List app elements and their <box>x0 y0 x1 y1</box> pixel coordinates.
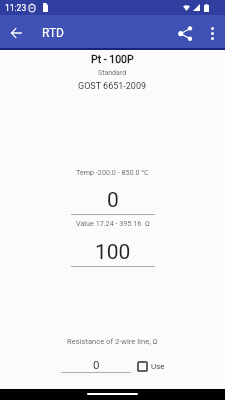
staticText: 0 <box>93 358 100 371</box>
staticText: 0 <box>107 188 119 213</box>
staticText: 100 <box>95 240 131 265</box>
staticText: Pt - 100P <box>91 53 134 65</box>
staticText: Temp -200.0 - 850.0 ℃ <box>76 167 149 177</box>
button[interactable]: Share <box>172 20 198 46</box>
staticText: Use <box>151 362 165 371</box>
button[interactable]: More options <box>200 21 224 45</box>
staticText: Standard <box>98 69 127 77</box>
staticText: Value 17.24 - 395.16 Ω <box>76 219 150 227</box>
staticText: GOST 6651-2009 <box>78 81 147 92</box>
button[interactable]: Use <box>137 361 165 372</box>
button[interactable]: Back <box>4 20 29 45</box>
staticText: RTD <box>42 26 64 40</box>
staticText: Resistance of 2-wire line, Ω <box>67 337 158 346</box>
staticText: 11:23 <box>5 3 27 13</box>
